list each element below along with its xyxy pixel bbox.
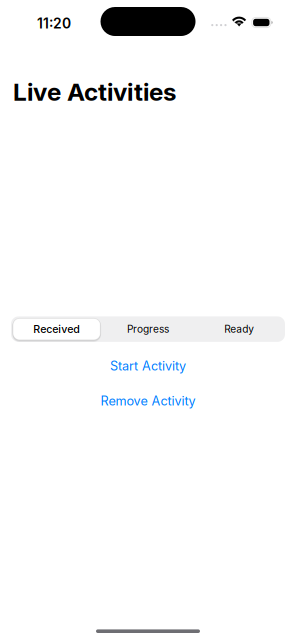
staticText: Received: [33, 323, 80, 336]
staticText: Ready: [224, 323, 254, 335]
staticText: Start Activity: [110, 358, 186, 373]
staticText: Progress: [127, 323, 169, 335]
staticText: Remove Activity: [100, 393, 195, 408]
button[interactable]: Start Activity: [0, 355, 296, 377]
button[interactable]: Progress: [102, 316, 194, 342]
button[interactable]: Received: [11, 316, 102, 342]
staticText: 11:20: [37, 15, 71, 32]
button[interactable]: Ready: [194, 316, 285, 342]
button[interactable]: Remove Activity: [0, 390, 296, 412]
staticText: Live Activities: [13, 77, 176, 106]
